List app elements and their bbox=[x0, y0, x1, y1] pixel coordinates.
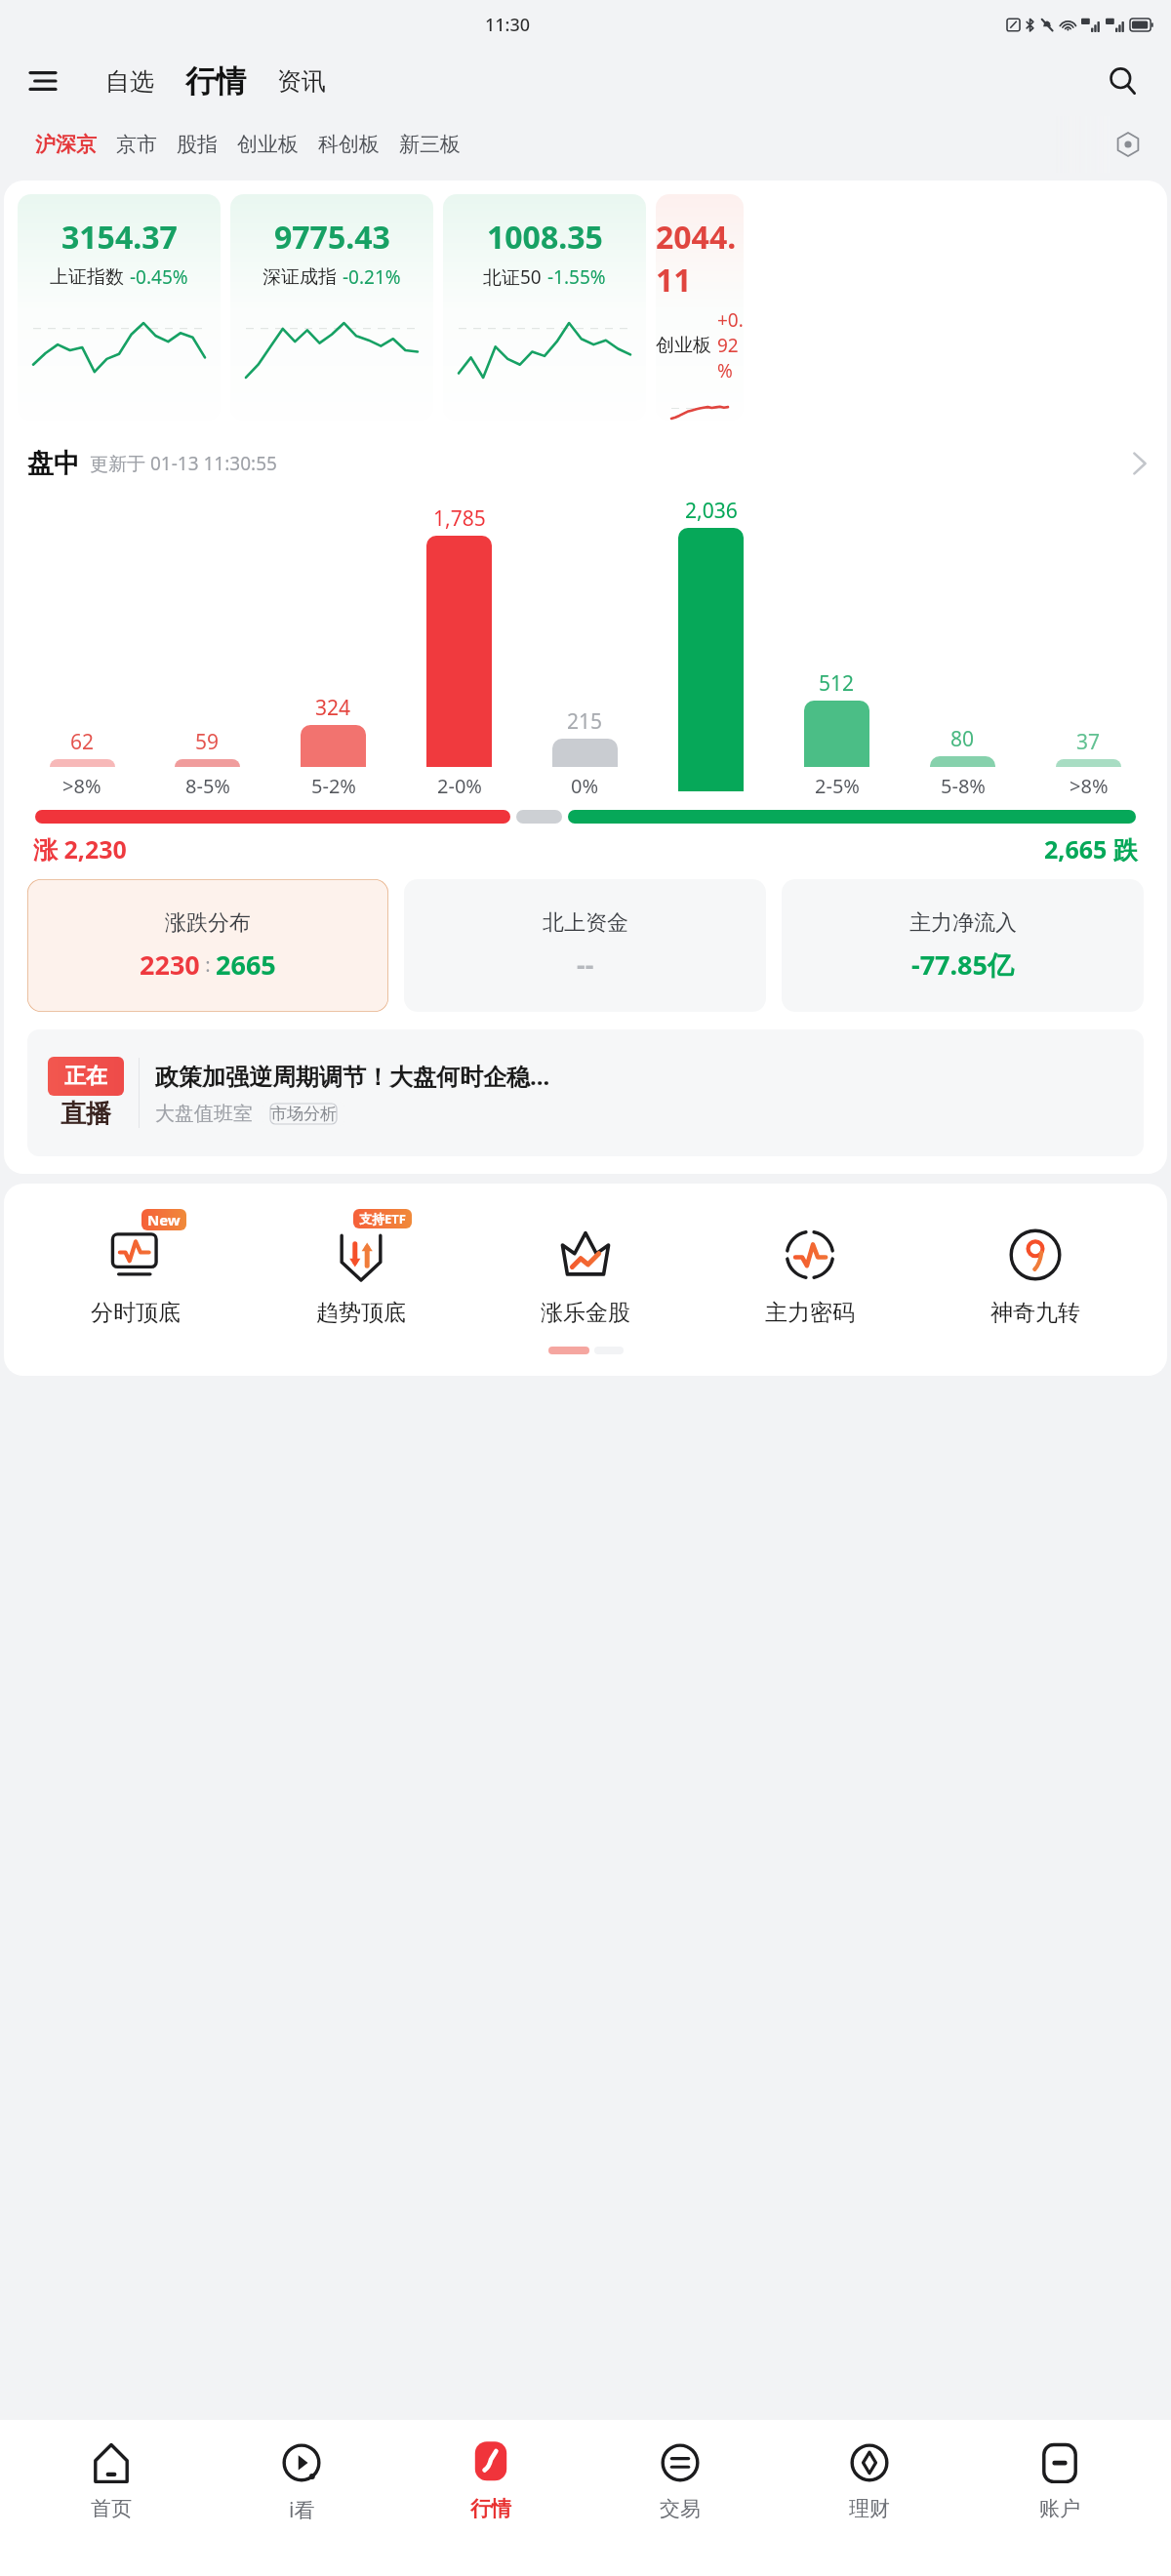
button[interactable]: 京市 bbox=[106, 126, 167, 163]
button[interactable]: 首页 bbox=[33, 2420, 189, 2521]
staticText: 资讯 bbox=[277, 66, 326, 97]
button[interactable]: 交易 bbox=[602, 2420, 758, 2521]
staticText: 正在 bbox=[64, 1063, 107, 1090]
staticText: 62 bbox=[70, 728, 95, 756]
staticText: 8-5% bbox=[185, 773, 230, 799]
staticText: 涨乐金股 bbox=[541, 1299, 630, 1327]
staticText: 京市 bbox=[116, 132, 157, 157]
button[interactable]: 3154.37 bbox=[18, 194, 221, 421]
staticText: 支持ETF bbox=[359, 1210, 406, 1228]
staticText: 趋势顶底 bbox=[316, 1299, 406, 1327]
staticText: 科创板 bbox=[318, 132, 380, 157]
button[interactable]: 9775.43 bbox=[230, 194, 433, 421]
staticText: 股指 bbox=[177, 132, 218, 157]
button[interactable]: 涨跌分布 bbox=[27, 879, 388, 1012]
staticText: 直播 bbox=[61, 1098, 111, 1130]
staticText: -1.55% bbox=[547, 264, 606, 290]
button[interactable]: 行情 bbox=[180, 60, 252, 102]
button[interactable]: 盘中 bbox=[4, 436, 1167, 491]
staticText: 神奇九转 bbox=[990, 1299, 1080, 1327]
staticText: -77.85亿 bbox=[911, 946, 1015, 983]
staticText: 行情 bbox=[470, 2496, 511, 2521]
staticText: 5-2% bbox=[311, 773, 356, 799]
button[interactable]: 主力净流入 bbox=[782, 879, 1144, 1012]
button[interactable]: 主力密码 bbox=[717, 1209, 903, 1327]
button[interactable]: 资讯 bbox=[269, 62, 334, 101]
staticText: 大盘值班室 bbox=[155, 1102, 253, 1126]
staticText: 上证指数 bbox=[50, 265, 124, 289]
staticText: 1,785 bbox=[433, 504, 486, 533]
staticText: 涨跌分布 bbox=[165, 909, 251, 937]
staticText: 11:30 bbox=[485, 13, 531, 37]
button[interactable]: i看 bbox=[223, 2420, 380, 2524]
staticText: 2,665 跌 bbox=[1044, 832, 1138, 865]
button[interactable]: 支持ETF bbox=[268, 1209, 454, 1327]
button[interactable]: 北上资金 bbox=[404, 879, 766, 1012]
staticText: 2,036 bbox=[685, 497, 738, 525]
staticText: -- bbox=[577, 946, 594, 983]
staticText: 2-0% bbox=[437, 773, 482, 799]
staticText: 创业板 bbox=[237, 132, 299, 157]
staticText: New bbox=[147, 1210, 181, 1229]
button[interactable]: 正在 bbox=[27, 1029, 1144, 1156]
staticText: 215 bbox=[567, 707, 603, 736]
staticText: 政策加强逆周期调节！大盘何时企稳... bbox=[155, 1060, 550, 1092]
staticText: 5-8% bbox=[941, 773, 986, 799]
button[interactable]: 2044.11 bbox=[656, 194, 744, 421]
staticText: : bbox=[200, 951, 216, 978]
button[interactable]: New bbox=[43, 1209, 228, 1327]
staticText: 沪深京 bbox=[35, 132, 97, 157]
staticText: >8% bbox=[62, 773, 101, 799]
staticText: 涨 2,230 bbox=[33, 832, 127, 865]
button[interactable]: 涨乐金股 bbox=[493, 1209, 678, 1327]
staticText: 行情 bbox=[185, 62, 246, 101]
button[interactable]: 创业板 bbox=[227, 126, 308, 163]
button[interactable]: 理财 bbox=[791, 2420, 948, 2521]
button[interactable]: 科创板 bbox=[308, 126, 389, 163]
staticText: 主力密码 bbox=[765, 1299, 855, 1327]
button[interactable]: 沪深京 bbox=[25, 126, 106, 163]
staticText: 2-5% bbox=[815, 773, 860, 799]
staticText: 更新于 01-13 11:30:55 bbox=[90, 451, 277, 476]
staticText: 账户 bbox=[1039, 2496, 1080, 2521]
staticText: i看 bbox=[289, 2496, 315, 2524]
button[interactable]: Menu bbox=[21, 60, 64, 102]
staticText: -0.45% bbox=[130, 264, 188, 290]
staticText: 市场分析 bbox=[270, 1104, 337, 1124]
staticText: 分时顶底 bbox=[91, 1299, 181, 1327]
staticText: 首页 bbox=[91, 2496, 132, 2521]
staticText: +0.92% bbox=[717, 307, 744, 383]
staticText: 3154.37 bbox=[61, 216, 178, 259]
staticText: 主力净流入 bbox=[909, 909, 1017, 937]
button[interactable]: Customize categories bbox=[1107, 123, 1150, 166]
staticText: 2044.11 bbox=[656, 216, 744, 302]
staticText: 2665 bbox=[216, 946, 276, 983]
button[interactable]: 行情 bbox=[413, 2420, 569, 2521]
staticText: 深证成指 bbox=[262, 265, 337, 289]
button[interactable]: 账户 bbox=[982, 2420, 1138, 2521]
staticText: >8% bbox=[1070, 773, 1109, 799]
staticText: 自选 bbox=[105, 66, 154, 97]
button[interactable]: 1008.35 bbox=[443, 194, 646, 421]
staticText: 交易 bbox=[660, 2496, 701, 2521]
staticText: 北上资金 bbox=[543, 909, 628, 937]
button[interactable]: 自选 bbox=[98, 62, 162, 101]
staticText: 9775.43 bbox=[274, 216, 390, 259]
staticText: 北证50 bbox=[483, 264, 542, 290]
staticText: -0.21% bbox=[343, 264, 401, 290]
staticText: 新三板 bbox=[399, 132, 461, 157]
button[interactable]: Search bbox=[1099, 58, 1146, 104]
staticText: 盘中 bbox=[27, 447, 80, 480]
button[interactable]: 股指 bbox=[167, 126, 227, 163]
staticText: 59 bbox=[195, 728, 220, 756]
staticText: 324 bbox=[315, 694, 351, 722]
staticText: 80 bbox=[950, 725, 975, 753]
button[interactable]: 神奇九转 bbox=[943, 1209, 1128, 1327]
staticText: 0% bbox=[571, 773, 599, 799]
staticText: 37 bbox=[1076, 728, 1101, 756]
staticText: 创业板 bbox=[656, 334, 711, 357]
staticText: 1008.35 bbox=[487, 216, 603, 259]
button[interactable]: 新三板 bbox=[389, 126, 470, 163]
staticText: 512 bbox=[819, 669, 855, 698]
